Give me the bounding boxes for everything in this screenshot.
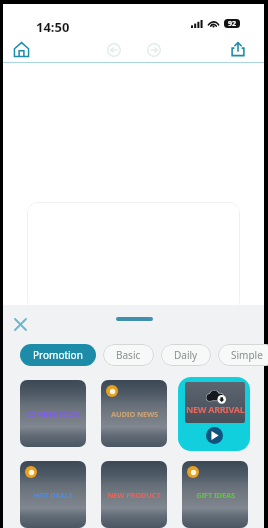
button[interactable]: Close bbox=[9, 313, 31, 335]
button[interactable]: GIFT IDEAS bbox=[182, 461, 248, 528]
staticText: 14:50 bbox=[36, 18, 70, 36]
staticText: GIFT IDEAS bbox=[196, 490, 235, 500]
staticText: Daily bbox=[174, 348, 198, 362]
staticText: NEW ARRIVAL bbox=[186, 403, 245, 415]
button[interactable]: Promotion bbox=[20, 344, 96, 366]
staticText: COMING SOON bbox=[26, 409, 80, 419]
button[interactable]: Back bbox=[102, 38, 125, 61]
button[interactable]: HOT DEALS bbox=[20, 461, 86, 528]
button[interactable]: Share bbox=[226, 37, 250, 61]
button[interactable]: NEW PRODUCT bbox=[101, 461, 167, 528]
staticText: HOT DEALS bbox=[33, 490, 73, 500]
button[interactable]: Daily bbox=[161, 344, 211, 366]
button[interactable]: COMING SOON bbox=[20, 380, 86, 447]
button[interactable]: Forward bbox=[142, 38, 165, 61]
staticText: Simple bbox=[231, 348, 263, 362]
button[interactable]: NEW ARRIVAL bbox=[178, 377, 250, 451]
staticText: 92 bbox=[228, 19, 237, 28]
staticText: Promotion bbox=[33, 348, 83, 362]
staticText: Basic bbox=[116, 348, 141, 362]
staticText: NEW PRODUCT bbox=[107, 490, 161, 500]
button[interactable]: AUDIO NEWS bbox=[101, 380, 167, 447]
button[interactable]: Simple bbox=[218, 344, 268, 366]
button[interactable]: Basic bbox=[103, 344, 154, 366]
staticText: AUDIO NEWS bbox=[111, 409, 158, 419]
button[interactable]: Home bbox=[9, 37, 33, 61]
